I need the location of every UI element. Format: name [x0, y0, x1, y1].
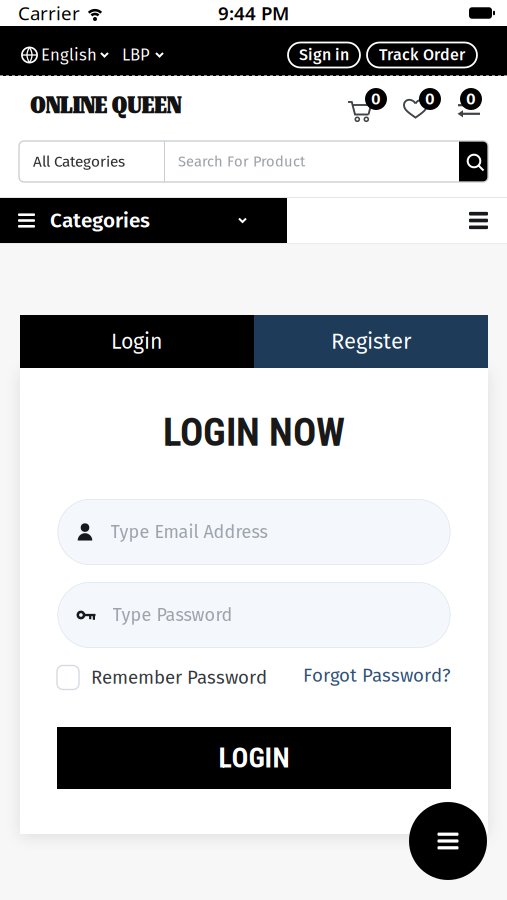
button[interactable]: Wishlist: [403, 88, 441, 122]
button[interactable]: Menu: [409, 802, 487, 880]
staticText: All Categories: [33, 152, 125, 171]
staticText: Categories: [50, 208, 150, 233]
button[interactable]: Type Email Address: [57, 499, 450, 565]
staticText: Register: [331, 328, 411, 355]
staticText: Track Order: [379, 45, 465, 65]
staticText: 0: [466, 89, 476, 109]
staticText: Type Email Address: [110, 521, 267, 543]
button[interactable]: Type Password: [57, 582, 450, 648]
button[interactable]: Cart: [347, 88, 387, 122]
staticText: Carrier: [18, 1, 80, 25]
button[interactable]: All Categories: [19, 141, 164, 182]
staticText: Login: [111, 329, 163, 354]
staticText: Sign in: [299, 45, 349, 65]
button[interactable]: Login: [20, 315, 254, 368]
staticText: LOGIN NOW: [163, 410, 345, 455]
button[interactable]: Sign in: [288, 42, 360, 67]
staticText: LOGIN: [218, 742, 289, 774]
staticText: Type Password: [112, 604, 232, 626]
staticText: English: [41, 45, 97, 65]
button[interactable]: Register: [254, 315, 488, 368]
button[interactable]: Remember Password: [57, 665, 267, 689]
staticText: Search For Product: [178, 153, 305, 170]
staticText: 9:44 PM: [218, 1, 289, 25]
button[interactable]: Track Order: [367, 42, 477, 67]
staticText: ONLINE QUEEN: [30, 91, 181, 119]
button[interactable]: Categories: [0, 198, 287, 243]
button[interactable]: LBP: [109, 45, 164, 65]
button[interactable]: English: [21, 45, 109, 65]
button[interactable]: Search: [459, 141, 488, 182]
staticText: Forgot Password?: [303, 664, 451, 687]
staticText: 0: [371, 89, 381, 109]
staticText: Remember Password: [91, 666, 267, 689]
staticText: LBP: [122, 45, 150, 65]
staticText: 0: [425, 89, 435, 109]
button[interactable]: Forgot Password?: [303, 664, 451, 687]
button[interactable]: LOGIN: [57, 727, 451, 789]
button[interactable]: Menu: [469, 212, 488, 229]
button[interactable]: Compare: [457, 88, 482, 122]
